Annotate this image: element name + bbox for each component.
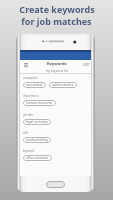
staticText: office assistant <box>26 156 49 160</box>
staticText: administrative <box>52 83 74 87</box>
staticText: Create keywords <box>19 3 95 15</box>
staticText: keyword <box>23 149 35 153</box>
button[interactable]: Home <box>46 181 65 188</box>
staticText: human resources <box>26 101 53 105</box>
staticText: medical billing <box>26 138 48 142</box>
staticText: occupation <box>23 76 38 80</box>
staticText: accountant <box>26 83 43 87</box>
staticText: skill <box>23 131 28 135</box>
button[interactable]: Menu <box>20 61 31 68</box>
button[interactable]: office assistant <box>23 155 52 161</box>
staticText: legal secretary <box>26 120 48 124</box>
button[interactable]: legal secretary <box>23 119 51 125</box>
staticText: job title <box>23 113 33 117</box>
staticText: Keywords <box>47 61 67 66</box>
staticText: EDIT <box>83 63 90 67</box>
staticText: department <box>23 94 39 98</box>
staticText: for job matches <box>21 15 92 27</box>
staticText: my keyword list <box>46 69 68 73</box>
button[interactable]: medical billing <box>23 137 51 143</box>
button[interactable]: administrative <box>49 82 77 88</box>
button[interactable]: accountant <box>23 82 46 88</box>
button[interactable]: human resources <box>23 100 56 106</box>
button[interactable]: EDIT <box>82 61 91 68</box>
